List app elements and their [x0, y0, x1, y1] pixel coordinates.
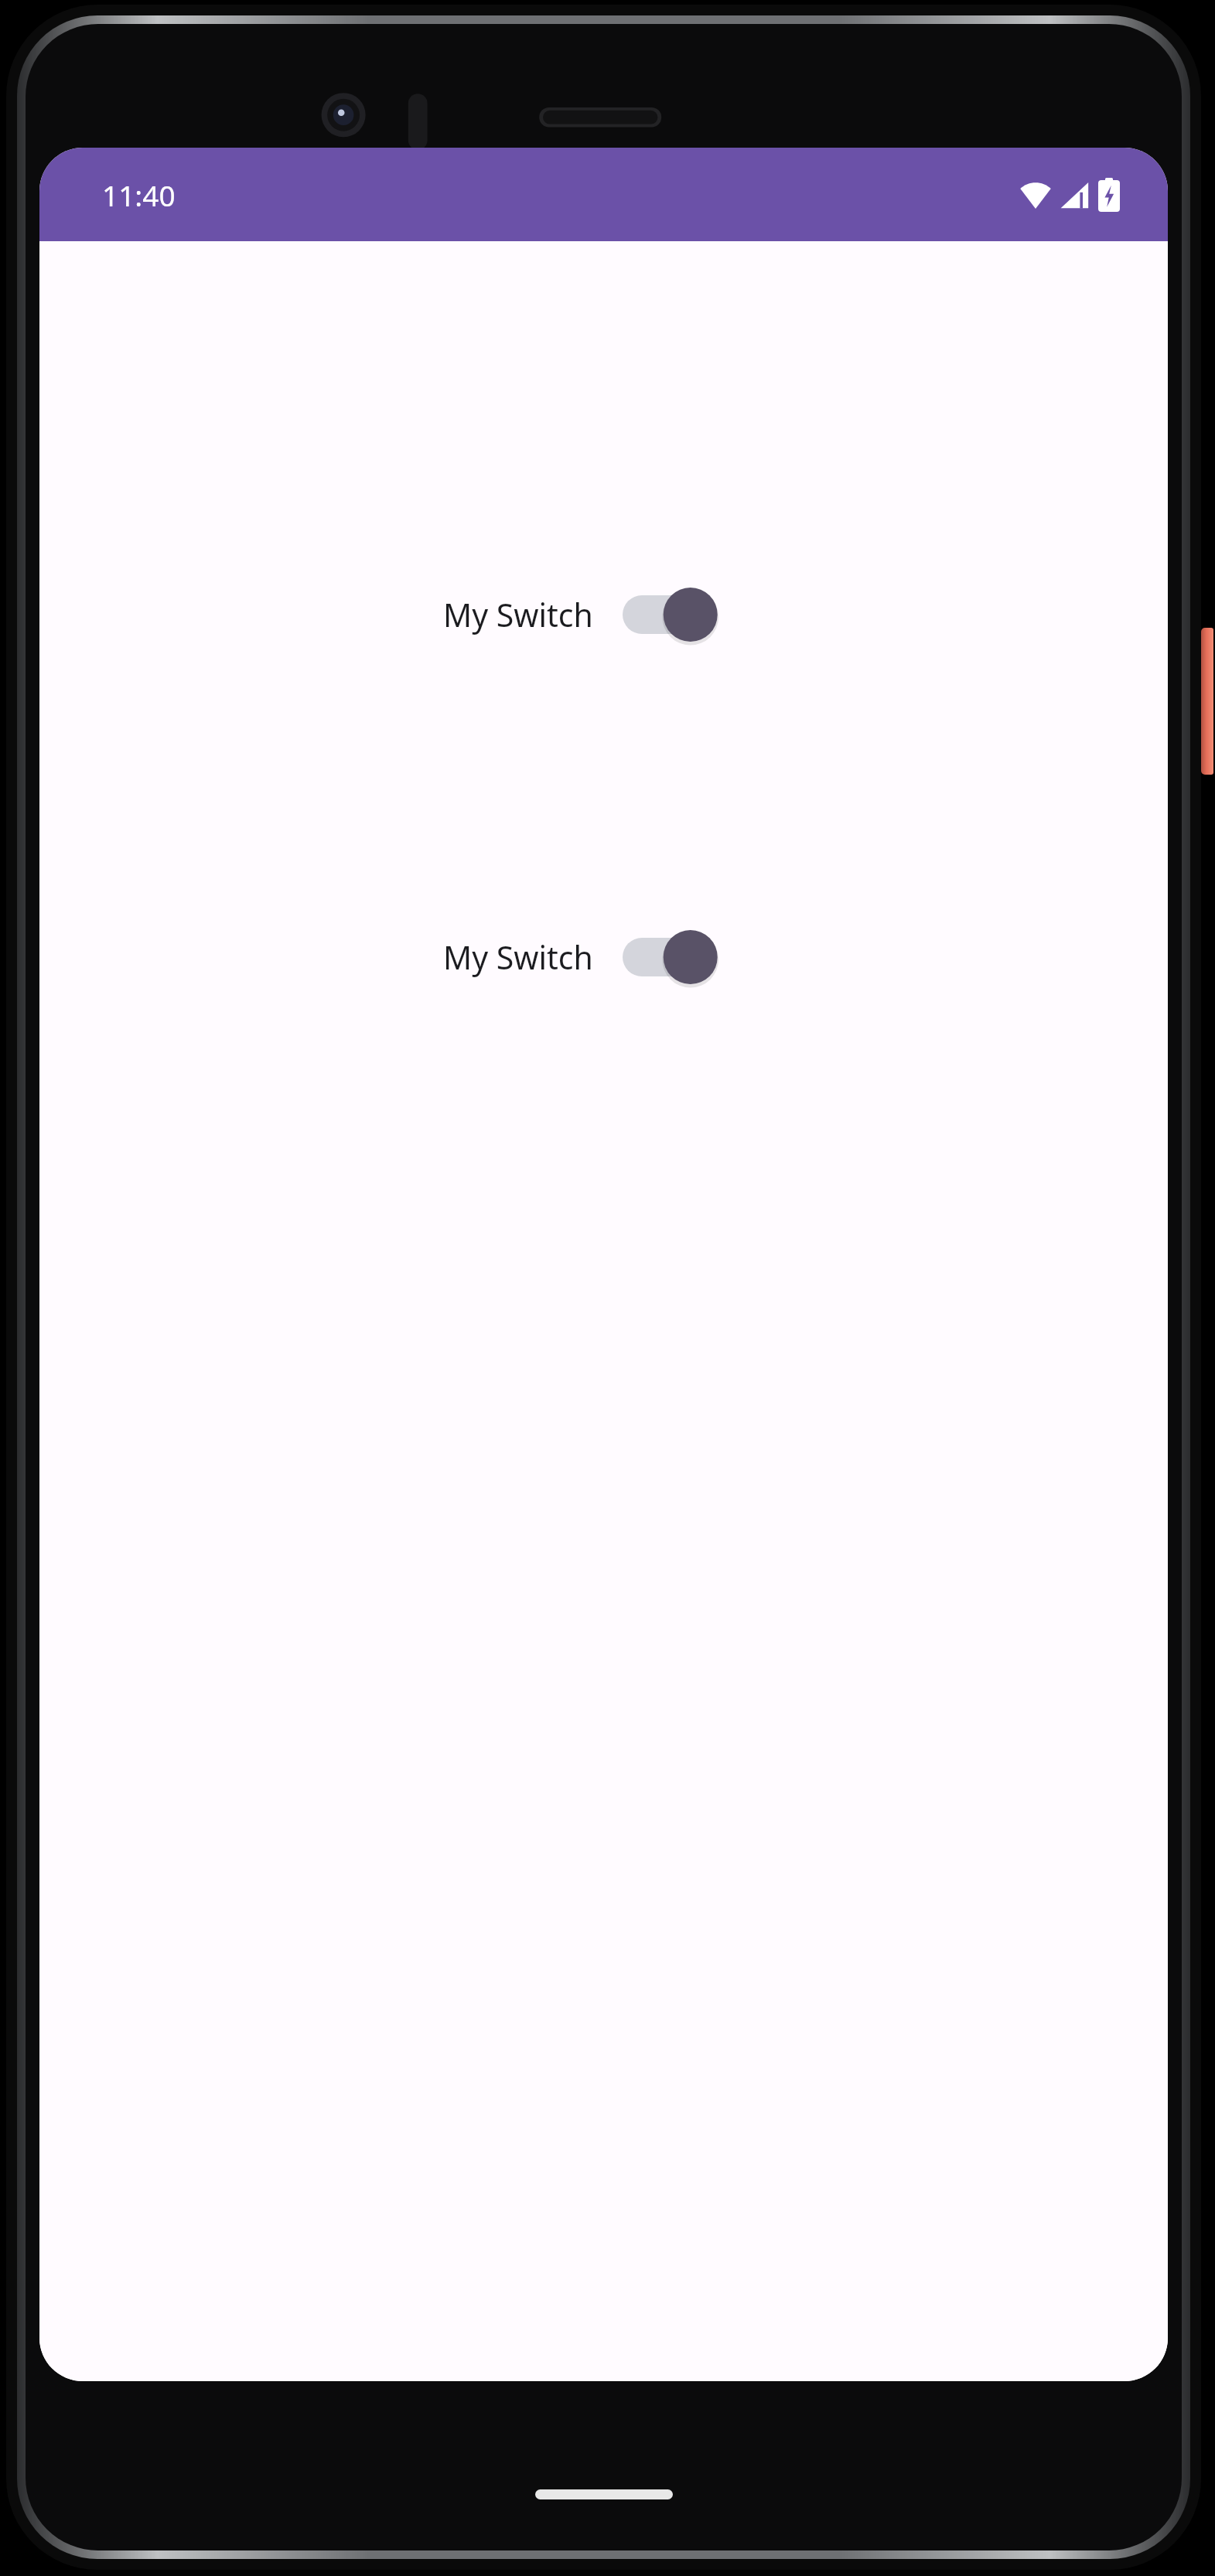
button[interactable]: My Switch toggle, on [443, 928, 711, 986]
button[interactable]: My Switch toggle, on [443, 585, 711, 644]
staticText: 11:40 [102, 175, 176, 214]
staticText: My Switch [443, 935, 593, 979]
staticText: My Switch [443, 593, 593, 636]
